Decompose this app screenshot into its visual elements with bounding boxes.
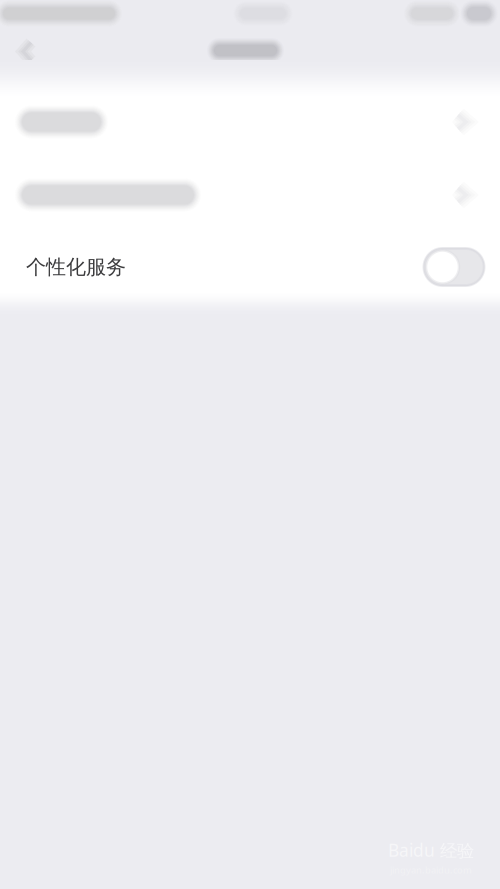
staticText: Baidu 经验 [388,838,474,862]
button[interactable]: 个性化服务 [0,232,500,296]
staticText: 个性化服务 [26,255,126,279]
button[interactable]: 设置项 [0,86,500,158]
button[interactable]: 设置项 [0,158,500,232]
button[interactable]: 返回 [0,27,55,85]
